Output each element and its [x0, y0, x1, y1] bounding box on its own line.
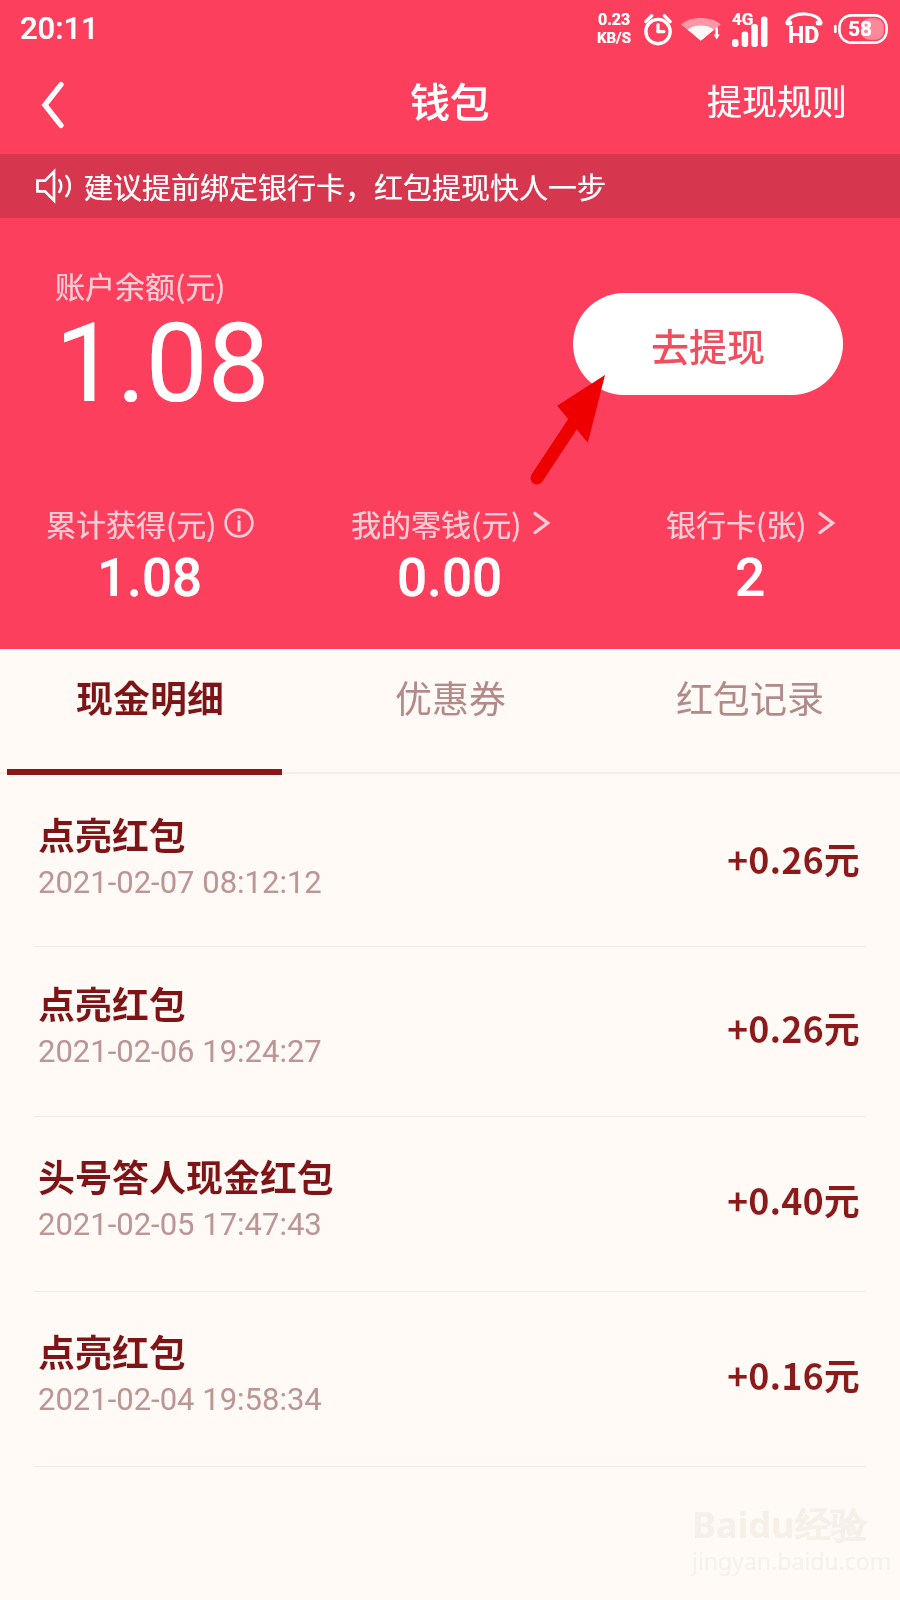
button[interactable]: 累计获得(元)	[0, 501, 300, 609]
staticText: 1.08	[97, 547, 203, 609]
staticText: jingyan.baidu.com	[692, 1545, 892, 1576]
staticText: 我的零钱(元)	[351, 501, 522, 544]
staticText: 点亮红包	[38, 976, 186, 1030]
button[interactable]: 我的零钱(元)	[300, 501, 600, 609]
button[interactable]: 点亮红包	[0, 947, 900, 1116]
button[interactable]: 点亮红包	[0, 1292, 900, 1466]
staticText: 点亮红包	[38, 807, 186, 861]
staticText: 2	[735, 547, 766, 609]
button[interactable]: 去提现	[573, 293, 843, 395]
button[interactable]: 头号答人现金红包	[0, 1117, 900, 1291]
staticText: +0.26元	[727, 832, 860, 884]
staticText: 2021-02-05 17:47:43	[38, 1206, 322, 1242]
staticText: 20:11	[20, 10, 99, 46]
staticText: 现金明细	[76, 670, 224, 724]
staticText: 2021-02-07 08:12:12	[38, 864, 322, 900]
staticText: 点亮红包	[38, 1324, 186, 1378]
staticText: HD	[788, 22, 820, 49]
staticText: 头号答人现金红包	[38, 1149, 334, 1203]
staticText: 优惠券	[395, 670, 506, 724]
staticText: KB/S	[597, 29, 631, 47]
staticText: +0.40元	[727, 1173, 860, 1225]
button[interactable]: 提现规则	[681, 56, 900, 154]
staticText: +0.16元	[727, 1348, 860, 1400]
staticText: 提现规则	[707, 74, 848, 125]
staticText: 钱包	[410, 71, 490, 129]
button[interactable]: 点亮红包	[0, 779, 900, 946]
staticText: 0.00	[397, 547, 503, 609]
staticText: 1.08	[55, 299, 270, 428]
staticText: 账户余额(元)	[55, 263, 226, 306]
button[interactable]: 银行卡(张)	[600, 501, 900, 609]
button[interactable]: Back	[0, 56, 110, 154]
button[interactable]: 现金明细	[0, 649, 300, 772]
staticText: +0.26元	[727, 1001, 860, 1053]
staticText: 累计获得(元)	[46, 501, 217, 544]
staticText: Baidu经验	[692, 1500, 867, 1549]
staticText: 建议提前绑定银行卡，红包提现快人一步	[84, 165, 607, 207]
staticText: 去提现	[651, 317, 766, 372]
staticText: 2021-02-04 19:58:34	[38, 1381, 322, 1417]
button[interactable]: 红包记录	[600, 649, 900, 772]
staticText: 银行卡(张)	[666, 501, 807, 544]
button[interactable]: 建议提前绑定银行卡，红包提现快人一步	[0, 154, 900, 218]
staticText: 58	[848, 17, 873, 42]
button[interactable]: 优惠券	[300, 649, 600, 772]
staticText: 2021-02-06 19:24:27	[38, 1033, 322, 1069]
staticText: 红包记录	[676, 670, 824, 724]
staticText: 4G	[732, 9, 754, 29]
staticText: 0.23	[598, 10, 631, 29]
